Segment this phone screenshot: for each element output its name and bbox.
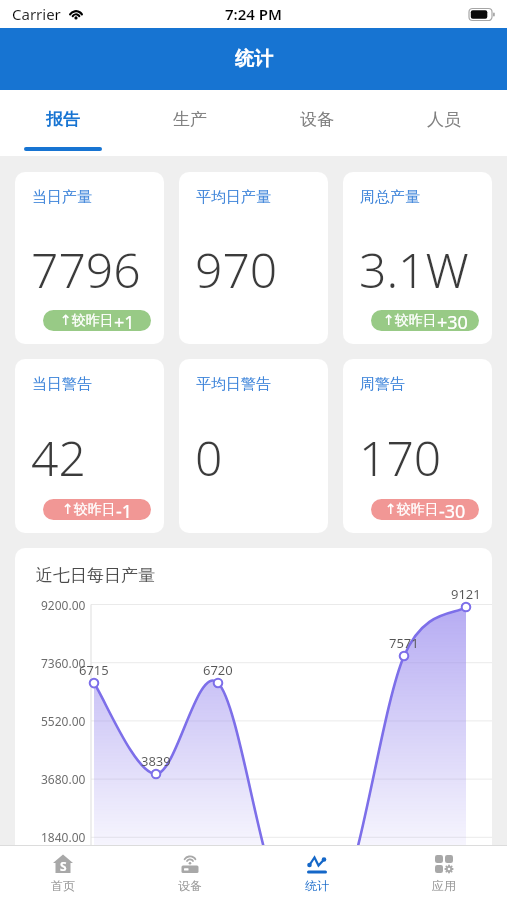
staticText: 9200.00 bbox=[41, 597, 86, 613]
staticText: 应用 bbox=[432, 878, 456, 893]
staticText: S bbox=[60, 858, 67, 874]
staticText: 3839 bbox=[141, 752, 171, 770]
staticText: 1840.00 bbox=[41, 829, 86, 845]
staticText: ↑较昨日 bbox=[385, 501, 439, 519]
staticText: 周总产量 bbox=[360, 188, 420, 207]
staticText: 170 bbox=[359, 425, 442, 490]
button[interactable]: 报告 bbox=[0, 90, 126, 156]
staticText: 7571 bbox=[389, 634, 419, 652]
staticText: -1 bbox=[116, 499, 133, 520]
staticText: 当日警告 bbox=[32, 375, 92, 394]
staticText: 近七日每日产量 bbox=[36, 565, 155, 586]
staticText: 报告 bbox=[46, 109, 80, 130]
staticText: 3680.00 bbox=[41, 771, 86, 787]
button[interactable]: S bbox=[0, 846, 126, 900]
staticText: 0 bbox=[195, 425, 223, 490]
button[interactable]: 统计 bbox=[253, 846, 380, 900]
button[interactable]: 设备 bbox=[126, 846, 253, 900]
staticText: 统计 bbox=[305, 878, 329, 893]
staticText: 970 bbox=[195, 237, 278, 302]
staticText: 人员 bbox=[427, 109, 461, 130]
staticText: 平均日警告 bbox=[196, 375, 271, 394]
button[interactable]: 当日产量 bbox=[15, 172, 164, 344]
button[interactable]: 平均日产量 bbox=[179, 172, 328, 344]
staticText: ↑较昨日 bbox=[62, 501, 116, 519]
staticText: -30 bbox=[439, 499, 466, 520]
button[interactable]: 应用 bbox=[380, 846, 507, 900]
staticText: 7360.00 bbox=[41, 655, 86, 671]
staticText: 统计 bbox=[235, 47, 273, 71]
staticText: +30 bbox=[437, 310, 468, 331]
staticText: 设备 bbox=[178, 878, 202, 893]
staticText: 设备 bbox=[300, 109, 334, 130]
staticText: 3.1W bbox=[359, 237, 469, 302]
staticText: 周警告 bbox=[360, 375, 405, 394]
staticText: 7:24 PM bbox=[225, 4, 282, 24]
staticText: 5520.00 bbox=[41, 713, 86, 729]
button[interactable]: 当日警告 bbox=[15, 359, 164, 533]
staticText: 首页 bbox=[51, 878, 75, 893]
staticText: 生产 bbox=[173, 109, 207, 130]
staticText: Carrier bbox=[12, 4, 61, 24]
staticText: ↑较昨日 bbox=[60, 312, 114, 330]
button[interactable]: 设备 bbox=[253, 90, 380, 156]
staticText: 当日产量 bbox=[32, 188, 92, 207]
button[interactable]: 生产 bbox=[126, 90, 253, 156]
staticText: ↑较昨日 bbox=[383, 312, 437, 330]
staticText: 42 bbox=[31, 425, 86, 490]
staticText: 9121 bbox=[451, 585, 481, 603]
staticText: 6720 bbox=[203, 661, 233, 679]
staticText: 6715 bbox=[79, 661, 109, 679]
button[interactable]: 周总产量 bbox=[343, 172, 492, 344]
staticText: 平均日产量 bbox=[196, 188, 271, 207]
staticText: 7796 bbox=[31, 237, 141, 302]
button[interactable]: 周警告 bbox=[343, 359, 492, 533]
staticText: +1 bbox=[114, 310, 135, 331]
button[interactable]: 平均日警告 bbox=[179, 359, 328, 533]
button[interactable]: 人员 bbox=[380, 90, 507, 156]
